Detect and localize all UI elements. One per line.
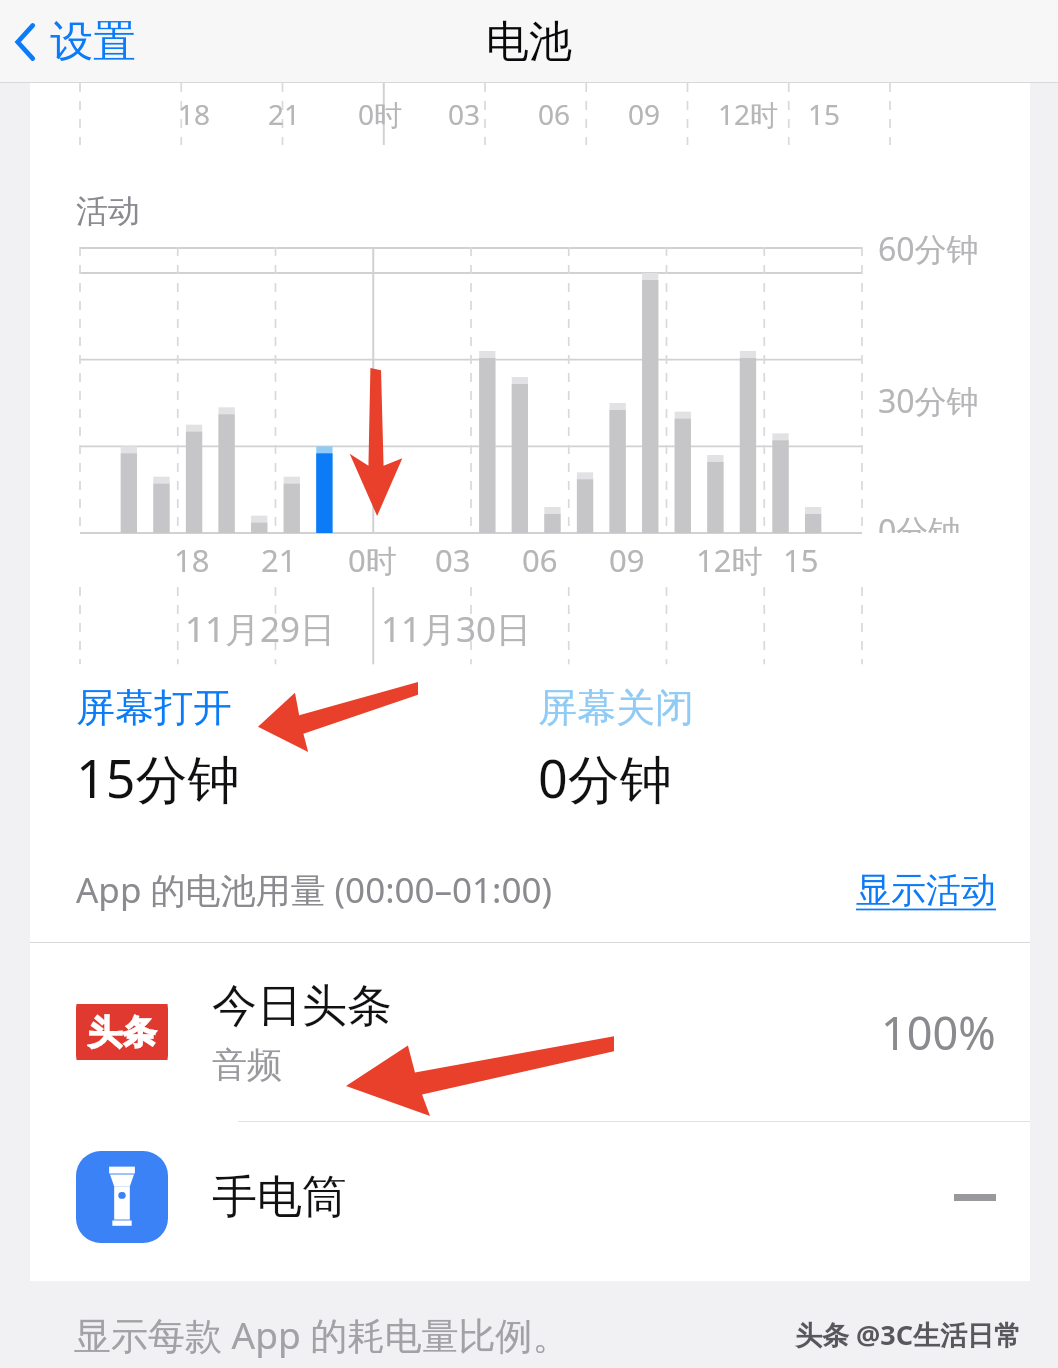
staticText: 活动 <box>76 191 140 231</box>
staticText: 屏幕关闭 <box>538 683 694 732</box>
staticText: 11月29日 <box>185 605 336 653</box>
staticText: 0时 <box>358 95 403 133</box>
staticText: 头条 @3C生活日常 <box>795 1316 1022 1353</box>
staticText: 60分钟 <box>878 227 979 271</box>
staticText: 今日头条 <box>212 978 392 1035</box>
button[interactable]: 屏幕关闭 <box>530 679 1030 817</box>
staticText: 09 <box>628 95 661 133</box>
staticText: 显示活动 <box>856 868 996 912</box>
staticText: 0分钟 <box>878 509 961 533</box>
button[interactable]: 头条 <box>30 943 1030 1121</box>
staticText: 屏幕打开 <box>76 683 232 732</box>
staticText: 18 <box>178 95 211 133</box>
button[interactable]: 手电筒 <box>30 1122 1030 1272</box>
staticText: 100% <box>881 1002 996 1063</box>
staticText: 09 <box>609 539 645 581</box>
staticText: 06 <box>522 539 558 581</box>
staticText: 15 <box>808 95 841 133</box>
staticText: App 的电池用量 (00:00–01:00) <box>76 866 553 914</box>
staticText: 头条 <box>88 1011 156 1054</box>
button[interactable]: 设置 <box>0 7 150 77</box>
staticText: 0时 <box>348 539 397 581</box>
staticText: 显示每款 App 的耗电量比例。 <box>74 1309 570 1360</box>
staticText: 21 <box>261 539 297 581</box>
staticText: 21 <box>268 95 301 133</box>
staticText: 12时 <box>718 95 779 133</box>
staticText: 设置 <box>50 15 136 69</box>
staticText: 03 <box>435 539 471 581</box>
staticText: 06 <box>538 95 571 133</box>
staticText: 03 <box>448 95 481 133</box>
staticText: 0分钟 <box>538 742 672 813</box>
staticText: 12时 <box>696 539 763 581</box>
button[interactable]: 屏幕打开 <box>30 679 530 817</box>
staticText: 音频 <box>212 1043 282 1087</box>
staticText: 18 <box>174 539 210 581</box>
staticText: 30分钟 <box>878 379 979 423</box>
staticText: 15分钟 <box>76 742 240 813</box>
staticText: 11月30日 <box>381 605 532 653</box>
staticText: 手电筒 <box>212 1169 347 1226</box>
staticText: 15 <box>783 539 819 581</box>
staticText: 电池 <box>486 15 572 69</box>
button[interactable]: 显示活动 <box>856 868 996 912</box>
